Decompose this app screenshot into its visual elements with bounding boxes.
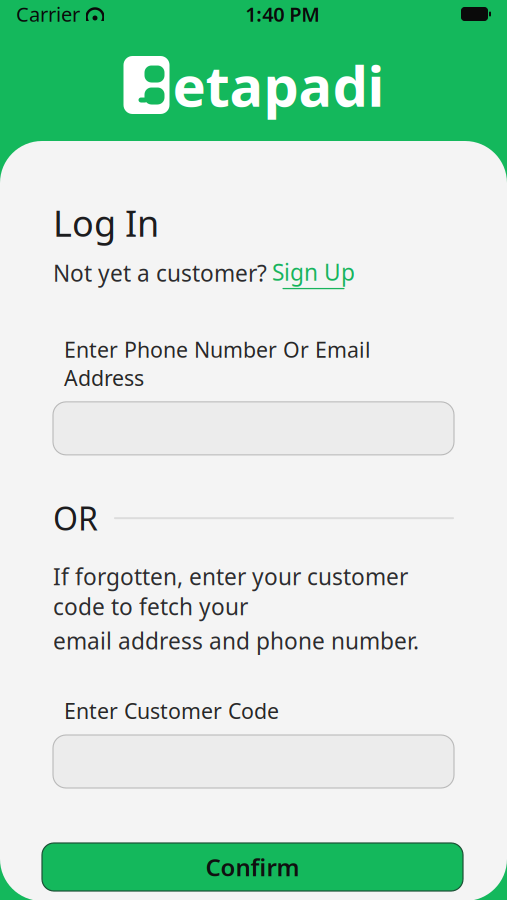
staticText: Not yet a customer?: [53, 258, 267, 288]
button[interactable]: Confirm: [42, 843, 463, 891]
button[interactable]: Sign Up: [272, 257, 355, 289]
staticText: Log In: [53, 199, 159, 247]
staticText: Sign Up: [272, 257, 355, 287]
staticText: Carrier: [16, 1, 80, 27]
staticText: OR: [53, 497, 98, 539]
staticText: Enter Customer Code: [64, 697, 279, 725]
staticText: If forgotten, enter your customer code t…: [53, 561, 408, 622]
staticText: 1:40 PM: [245, 1, 320, 27]
staticText: Enter Phone Number Or Email Address: [64, 335, 371, 392]
staticText: Confirm: [205, 851, 299, 883]
staticText: email address and phone number.: [53, 626, 419, 656]
staticText: etapadi: [172, 48, 384, 122]
